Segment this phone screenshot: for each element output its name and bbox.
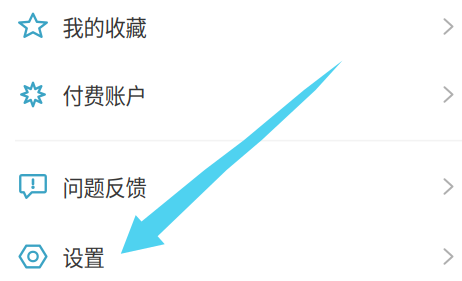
staticText: 问题反馈: [62, 171, 146, 202]
button[interactable]: 付费账户: [0, 67, 462, 121]
staticText: 付费账户: [62, 79, 146, 110]
button[interactable]: 我的收藏: [0, 0, 462, 53]
staticText: 设置: [62, 241, 104, 272]
button[interactable]: 问题反馈: [0, 159, 462, 213]
staticText: 我的收藏: [62, 11, 146, 42]
button[interactable]: 设置: [0, 229, 462, 281]
